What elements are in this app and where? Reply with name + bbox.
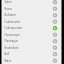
button[interactable]: Buildozer xyxy=(2,13,62,20)
button[interactable]: Sphre xyxy=(2,0,62,7)
button[interactable]: Wave xyxy=(2,59,62,64)
button[interactable]: Ball xyxy=(2,52,62,59)
button[interactable]: Cubebrusher xyxy=(2,20,62,27)
button[interactable]: Cuberpounder xyxy=(2,26,62,33)
button[interactable]: Plasmagun xyxy=(2,39,62,46)
button[interactable]: Rocketlnchr xyxy=(2,46,62,53)
button[interactable]: Bounc xyxy=(2,7,62,14)
button[interactable]: Flipconveyor xyxy=(2,33,62,40)
